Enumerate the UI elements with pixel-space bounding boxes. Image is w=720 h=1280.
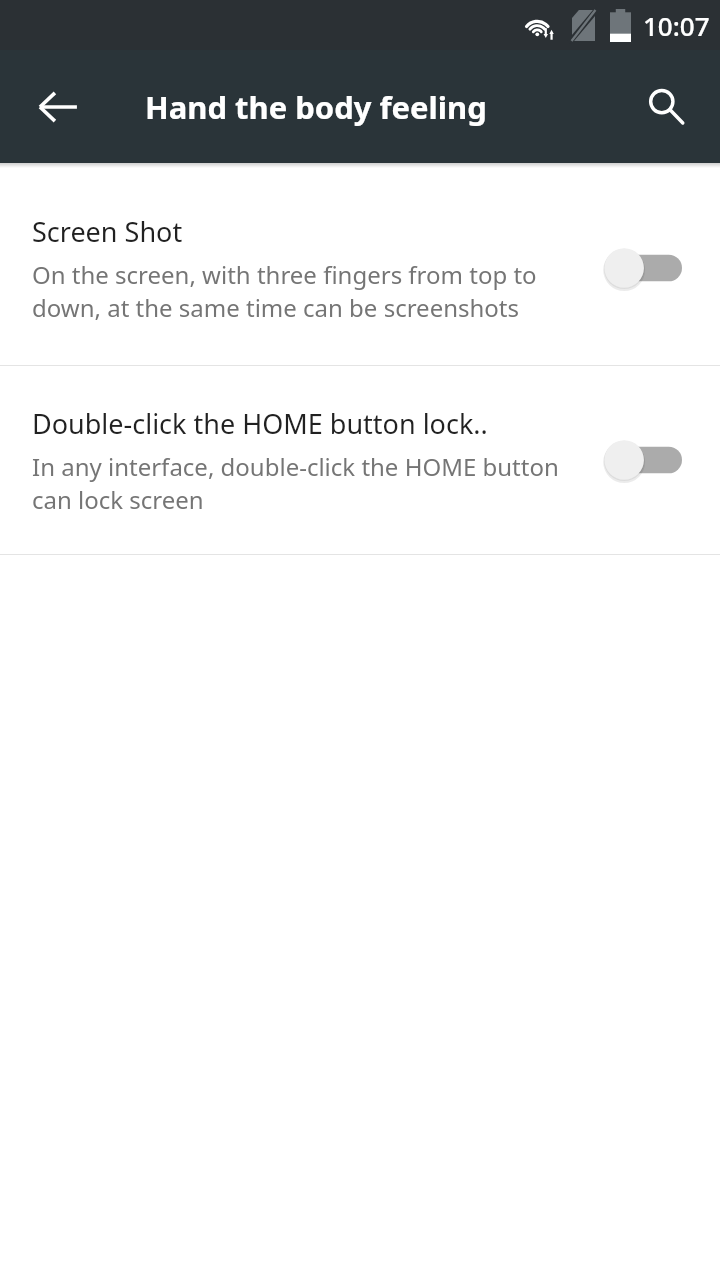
staticText: Double-click the HOME button lock.. [32,405,488,442]
staticText: Screen Shot [32,213,183,250]
button[interactable]: Toggle Double-click the HOME button lock… [600,431,686,489]
staticText: In any interface, double-click the HOME … [32,450,590,516]
button[interactable]: Search [628,69,704,145]
button[interactable]: Toggle Screen Shot [600,239,686,297]
staticText: Hand the body feeling [145,86,487,128]
button[interactable]: Back [20,69,96,145]
staticText: 10:07 [643,8,710,43]
staticText: On the screen, with three fingers from t… [32,258,590,324]
button[interactable]: Double-click the HOME button lock.. [0,366,720,554]
button[interactable]: Screen Shot [0,171,720,365]
